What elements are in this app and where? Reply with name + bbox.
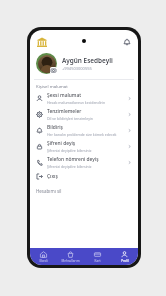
button[interactable]: Profil [111, 248, 138, 265]
button[interactable]: Şexsi malumat [30, 90, 138, 106]
button[interactable]: Şifreni deyiş [30, 138, 138, 154]
staticText: Kişisel malumat [36, 83, 68, 89]
staticText: Dil ve bildirişleri tenzimleyin [47, 116, 93, 121]
staticText: Şifreni deyiş [47, 140, 76, 147]
button[interactable]: Mehsullarım [57, 248, 84, 265]
button[interactable]: Kart [84, 248, 111, 265]
staticText: Şifrenizi deyişdire bilersiniz [47, 164, 92, 169]
staticText: Her kanalın problemde size kömek edecek [47, 132, 117, 137]
button[interactable]: Ebedi [30, 248, 57, 265]
staticText: Tenzimlemeler [47, 108, 82, 115]
staticText: +994503000555 [62, 66, 92, 71]
staticText: Profil [121, 259, 129, 263]
button[interactable]: Hesabımı sil [30, 183, 138, 198]
staticText: Hesab malumatlarınızı kecidendirin [47, 100, 106, 105]
staticText: Ebedi [39, 259, 48, 263]
button[interactable]: Logo [35, 35, 48, 48]
staticText: Şexsi malumat [47, 92, 82, 99]
button[interactable]: Telefon nömreni deyiş [30, 154, 138, 170]
staticText: Çıxış [47, 173, 58, 180]
button[interactable]: Şəkli dəyiş [50, 67, 57, 74]
staticText: Mehsullarım [61, 259, 80, 263]
button[interactable]: Çıxış [30, 170, 138, 183]
staticText: Bildiriş [47, 124, 63, 131]
button[interactable]: Tenzimlemeler [30, 106, 138, 122]
staticText: Telefon nömreni deyiş [47, 156, 99, 163]
staticText: Şifrenizi deyişdire bilersiniz [47, 148, 92, 153]
button[interactable]: Şəkli dəyiş [30, 52, 138, 79]
staticText: Hesabımı sil [36, 188, 62, 194]
staticText: Kart [94, 259, 101, 263]
button[interactable]: Bildirişlər [120, 35, 133, 48]
staticText: Aygün Esedbeyli [62, 56, 113, 65]
button[interactable]: Bildiriş [30, 122, 138, 138]
